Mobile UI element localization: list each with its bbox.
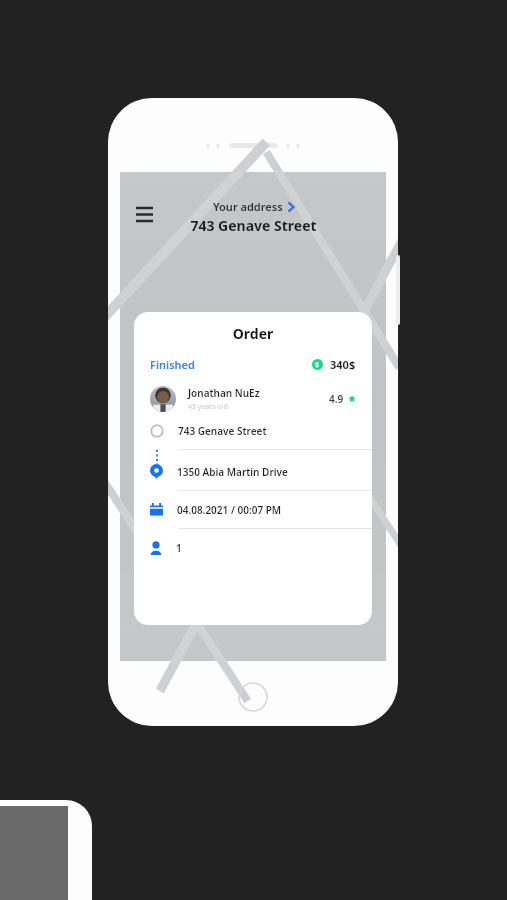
staticText: Order [150,324,356,343]
staticText: 1350 Abia Martin Drive [177,465,288,479]
button[interactable]: Jonathan NuEz [150,386,356,412]
staticText: 04.08.2021 / 00:07 PM [177,503,282,517]
button[interactable]: 743 Genave Street [150,424,356,450]
staticText: $ [315,360,320,370]
button[interactable]: 04.08.2021 / 00:07 PM [150,491,356,529]
staticText: 743 Genave Street [178,424,267,438]
staticText: Your address [213,199,283,214]
button[interactable]: Your address [213,199,294,214]
staticText: 4.9 [329,392,344,406]
staticText: Jonathan NuEz [188,386,260,400]
staticText: Finished [150,357,195,372]
staticText: 340$ [330,357,356,372]
button[interactable]: 1 [150,529,356,555]
button[interactable]: 1350 Abia Martin Drive [150,464,356,491]
button[interactable]: Home [238,682,268,712]
button[interactable]: Menu [130,200,158,228]
staticText: 1 [176,541,182,555]
staticText: 45 years old [188,402,228,412]
staticText: 743 Genave Street [190,216,317,235]
